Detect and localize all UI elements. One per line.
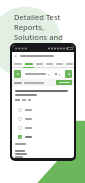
button[interactable] bbox=[23, 60, 34, 67]
button[interactable] bbox=[25, 70, 50, 78]
button[interactable] bbox=[18, 123, 71, 132]
button[interactable] bbox=[54, 60, 64, 67]
button[interactable] bbox=[18, 105, 71, 114]
button[interactable] bbox=[55, 70, 62, 78]
button[interactable]: Back bbox=[14, 54, 18, 58]
staticText: Detailed Test Reports, Solutions and Exp… bbox=[14, 12, 76, 52]
button[interactable]: Previous question bbox=[14, 70, 21, 78]
button[interactable]: Next question bbox=[65, 70, 72, 78]
button[interactable] bbox=[18, 132, 71, 141]
button[interactable] bbox=[64, 60, 74, 67]
button[interactable] bbox=[56, 80, 72, 85]
button[interactable] bbox=[34, 60, 44, 67]
button[interactable] bbox=[18, 114, 71, 123]
button[interactable] bbox=[44, 60, 54, 67]
button[interactable] bbox=[12, 60, 23, 67]
